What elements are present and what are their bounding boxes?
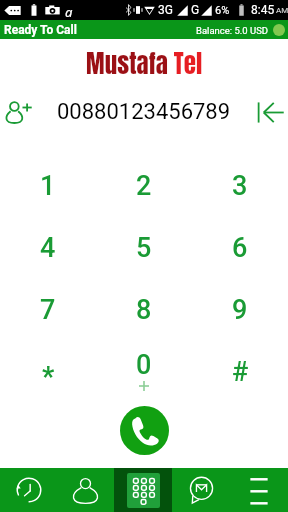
button[interactable]: 9 (192, 279, 288, 341)
staticText: 6 (232, 232, 248, 264)
button[interactable]: # (192, 341, 288, 403)
button[interactable]: Add contact (0, 90, 40, 134)
button[interactable]: 5 (96, 217, 192, 279)
button[interactable]: Call (120, 406, 169, 455)
staticText: # (232, 356, 249, 388)
button[interactable]: 0 (96, 341, 192, 403)
button[interactable]: 7 (0, 279, 96, 341)
button[interactable]: Backspace (246, 90, 288, 134)
button[interactable]: 1 (0, 155, 96, 217)
button[interactable]: Recent calls (0, 468, 57, 512)
staticText: G (191, 3, 200, 17)
staticText: 6% (215, 4, 230, 17)
button[interactable]: Messages (172, 468, 230, 512)
staticText: Mustafa (86, 45, 168, 83)
staticText: 5 (136, 232, 152, 264)
staticText: 7 (40, 294, 56, 326)
button[interactable]: Contacts (57, 468, 114, 512)
button[interactable]: Keypad (114, 468, 172, 512)
staticText: Ready To Call (4, 23, 77, 37)
staticText: 9 (232, 294, 248, 326)
staticText: Balance: 5.0 USD (196, 25, 269, 36)
staticText: a (65, 3, 73, 21)
staticText: 4 (40, 232, 56, 264)
button[interactable]: 8 (96, 279, 192, 341)
button[interactable]: 4 (0, 217, 96, 279)
staticText: * (42, 361, 55, 393)
button[interactable]: * (0, 341, 96, 403)
staticText: 00880123456789 (57, 99, 231, 125)
staticText: 3G (158, 3, 173, 17)
staticText: 3 (232, 170, 248, 202)
staticText: 8 (136, 294, 152, 326)
staticText: Tel (168, 45, 203, 83)
button[interactable]: 3 (192, 155, 288, 217)
staticText: 1 (40, 170, 56, 202)
staticText: 2 (136, 170, 152, 202)
staticText: 8:45 (251, 3, 275, 17)
button[interactable]: 2 (96, 155, 192, 217)
button[interactable]: 6 (192, 217, 288, 279)
button[interactable]: Menu (230, 468, 288, 512)
staticText: AM (276, 6, 288, 15)
staticText: 0 (136, 349, 152, 381)
